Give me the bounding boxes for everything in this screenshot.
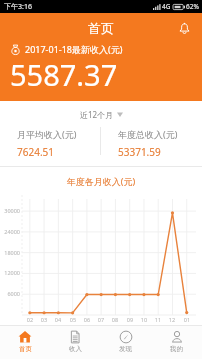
button[interactable]: 收入 xyxy=(50,326,100,359)
staticText: 5587.37 xyxy=(10,55,118,94)
staticText: 05 xyxy=(68,316,78,323)
staticText: 月平均收入(元) xyxy=(17,128,77,140)
staticText: 53371.59 xyxy=(118,145,161,159)
staticText: 18000 xyxy=(1,249,20,256)
staticText: 发现 xyxy=(119,345,132,353)
staticText: 04 xyxy=(53,316,63,323)
staticText: 首页 xyxy=(19,345,32,353)
button[interactable]: 年度总收入(元) xyxy=(101,122,202,166)
staticText: 首页 xyxy=(88,20,114,36)
staticText: 06 xyxy=(82,316,92,323)
staticText: 年度各月收入(元) xyxy=(0,175,202,187)
staticText: 7624.51 xyxy=(17,145,54,159)
staticText: 07 xyxy=(96,316,106,323)
staticText: 62% xyxy=(186,2,199,11)
staticText: 10 xyxy=(139,316,149,323)
staticText: 我的 xyxy=(170,345,183,353)
staticText: 02 xyxy=(25,316,35,323)
button[interactable]: 发现 xyxy=(100,326,151,359)
staticText: 03 xyxy=(39,316,49,323)
button[interactable]: 月平均收入(元) xyxy=(0,122,100,166)
staticText: 08 xyxy=(110,316,120,323)
staticText: 下午3:16 xyxy=(4,2,32,12)
staticText: 6000 xyxy=(1,290,20,297)
staticText: 24000 xyxy=(1,228,20,235)
staticText: 收入 xyxy=(69,345,82,353)
button[interactable]: 近12个月 xyxy=(74,107,129,122)
staticText: 2017-01-18最新收入(元) xyxy=(25,43,123,55)
staticText: 12000 xyxy=(1,269,20,276)
button[interactable]: 首页 xyxy=(0,326,50,359)
button[interactable]: 我的 xyxy=(151,326,202,359)
staticText: 近12个月 xyxy=(80,109,114,120)
staticText: 11 xyxy=(153,316,163,323)
staticText: 4G xyxy=(162,2,171,11)
staticText: 12 xyxy=(167,316,177,323)
button[interactable]: Notifications xyxy=(173,17,195,39)
staticText: 09 xyxy=(125,316,135,323)
staticText: 30000 xyxy=(1,207,20,214)
staticText: 01 xyxy=(182,316,192,323)
staticText: 年度总收入(元) xyxy=(118,128,178,140)
